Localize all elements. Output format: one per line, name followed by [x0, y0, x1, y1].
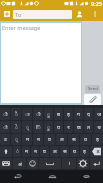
button[interactable]: Enter message — [1, 23, 81, 103]
staticText: व — [43, 148, 46, 155]
button[interactable]: Space — [39, 158, 61, 169]
staticText: ह — [83, 148, 86, 155]
button[interactable]: ै — [11, 108, 21, 120]
button[interactable]: ट — [0, 134, 10, 145]
staticText: त — [87, 124, 90, 131]
staticText: ् — [15, 136, 18, 143]
staticText: ं — [16, 148, 19, 155]
button[interactable]: ी — [33, 108, 43, 120]
button[interactable]: Apps — [1, 8, 12, 19]
button[interactable]: ि — [33, 121, 43, 133]
button[interactable]: ह — [64, 108, 73, 120]
button[interactable]: Send — [85, 85, 100, 93]
button[interactable]: ब — [54, 108, 63, 120]
staticText: ह — [96, 136, 99, 143]
button[interactable]: व — [44, 134, 55, 145]
button[interactable]: Attach — [84, 94, 101, 105]
button[interactable]: ा — [22, 108, 32, 120]
button[interactable]: ग — [74, 108, 83, 120]
button[interactable]: Enter — [90, 158, 103, 169]
staticText: म — [26, 136, 29, 143]
button[interactable]: े — [11, 121, 21, 133]
staticText: ौ — [3, 111, 8, 118]
staticText: ट — [4, 136, 7, 143]
button[interactable]: र — [64, 121, 73, 133]
staticText: । — [68, 160, 70, 167]
staticText: ो — [3, 124, 8, 131]
button[interactable]: न — [33, 134, 43, 145]
staticText: ज — [97, 111, 101, 118]
button[interactable]: क — [74, 121, 83, 133]
staticText: अं — [18, 161, 22, 167]
button[interactable]: त — [84, 121, 93, 133]
staticText: न — [37, 136, 40, 143]
staticText: क — [77, 124, 81, 131]
button[interactable]: Choose contact — [73, 8, 85, 20]
staticText: Enter message — [2, 24, 41, 31]
staticText: ि — [36, 124, 41, 131]
button[interactable]: ह — [80, 146, 89, 157]
button[interactable]: ् — [22, 121, 32, 133]
staticText: ी — [36, 111, 41, 118]
button[interactable]: म — [22, 134, 32, 145]
staticText: ा — [25, 111, 30, 118]
staticText: य — [73, 148, 76, 155]
staticText: र — [67, 124, 70, 131]
button[interactable]: ौ — [0, 108, 10, 120]
button[interactable]: Shift — [0, 146, 12, 157]
staticText: ै — [15, 111, 18, 118]
staticText: द — [87, 111, 90, 118]
staticText: े — [15, 124, 18, 131]
button[interactable]: Home — [35, 170, 69, 183]
staticText: ल — [60, 136, 64, 143]
button[interactable]: ् — [11, 134, 21, 145]
staticText: प — [57, 124, 60, 131]
staticText: 9:25 — [91, 0, 102, 7]
staticText: ह — [67, 111, 70, 118]
staticText: य — [84, 136, 87, 143]
button[interactable]: न — [31, 146, 39, 157]
staticText: ब — [57, 111, 60, 118]
button[interactable]: More options — [89, 8, 101, 20]
button[interactable]: च — [94, 121, 103, 133]
staticText: To — [15, 11, 22, 18]
staticText: ु — [47, 124, 50, 131]
staticText: Send — [88, 86, 98, 92]
button[interactable]: ो — [0, 121, 10, 133]
button[interactable]: Settings — [77, 158, 89, 169]
staticText: च — [97, 124, 101, 131]
button[interactable]: य — [80, 134, 91, 145]
button[interactable]: ह — [92, 134, 103, 145]
staticText: ग — [77, 111, 80, 118]
button[interactable]: ु — [44, 121, 53, 133]
button[interactable]: ल — [56, 134, 67, 145]
button[interactable]: प — [54, 121, 63, 133]
button[interactable]: य — [70, 146, 79, 157]
button[interactable]: व — [40, 146, 49, 157]
button[interactable]: ं — [13, 146, 21, 157]
button[interactable]: Switch keyboard — [0, 158, 12, 169]
button[interactable]: To — [13, 10, 72, 19]
staticText: म — [25, 148, 28, 155]
staticText: ू — [47, 111, 50, 118]
staticText: व — [48, 136, 51, 143]
button[interactable]: ू — [44, 108, 53, 120]
button[interactable]: ज — [94, 108, 103, 120]
button[interactable]: Emoji — [27, 158, 38, 169]
button[interactable]: । — [62, 158, 76, 169]
button[interactable]: म — [22, 146, 30, 157]
staticText: ् — [26, 124, 29, 131]
staticText: ल — [53, 148, 57, 155]
staticText: स — [63, 148, 67, 155]
button[interactable]: द — [84, 108, 93, 120]
staticText: स — [72, 136, 76, 143]
button[interactable]: ल — [50, 146, 59, 157]
button[interactable]: Back — [0, 170, 35, 183]
button[interactable]: स — [68, 134, 79, 145]
button[interactable]: स — [60, 146, 69, 157]
button[interactable]: अं — [13, 158, 26, 169]
button[interactable]: Recent apps — [69, 170, 103, 183]
staticText: न — [34, 148, 37, 155]
button[interactable]: Backspace — [90, 146, 103, 157]
